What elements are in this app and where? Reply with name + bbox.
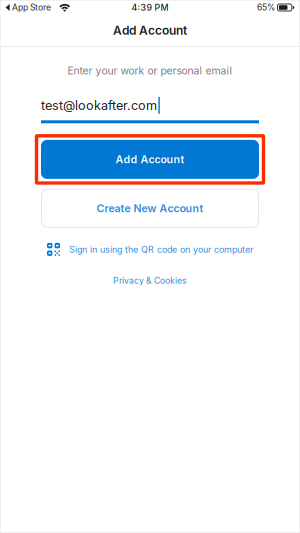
staticText: App Store: [12, 2, 51, 13]
button[interactable]: Create New Account: [41, 189, 258, 227]
staticText: test@lookafter.com: [41, 98, 157, 113]
button[interactable]: Privacy & Cookies: [113, 275, 187, 286]
staticText: Create New Account: [96, 202, 203, 215]
staticText: Sign in using the QR code on your comput…: [69, 244, 253, 255]
button[interactable]: Add Account: [41, 140, 259, 179]
staticText: Add Account: [115, 153, 184, 166]
staticText: Enter your work or personal email: [67, 64, 232, 77]
staticText: Privacy & Cookies: [113, 275, 187, 286]
button[interactable]: Sign in using the QR code on your comput…: [47, 243, 253, 256]
staticText: Add Account: [113, 23, 187, 38]
staticText: 65%: [257, 2, 275, 13]
staticText: 4:39 PM: [131, 2, 168, 13]
